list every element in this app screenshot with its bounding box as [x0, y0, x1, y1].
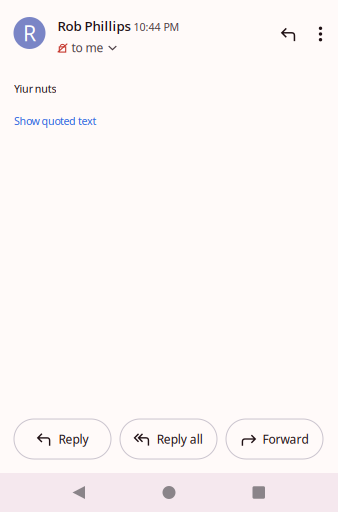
staticText: Reply all: [157, 431, 203, 447]
button[interactable]: Show quoted text: [14, 96, 96, 128]
button[interactable]: to me: [57, 40, 117, 56]
staticText: Show quoted text: [14, 114, 96, 128]
button[interactable]: Reply: [14, 419, 111, 459]
button[interactable]: Recent apps: [252, 473, 338, 512]
staticText: Yiur nuts: [14, 82, 56, 96]
button[interactable]: Reply all: [120, 419, 217, 459]
staticText: Forward: [262, 431, 308, 447]
button[interactable]: Home: [85, 473, 252, 512]
staticText: Reply: [58, 431, 88, 447]
staticText: to me: [71, 40, 103, 56]
staticText: R: [23, 19, 36, 47]
button[interactable]: Forward: [226, 419, 323, 459]
staticText: Rob Phillips: [57, 17, 130, 35]
staticText: 10:44 PM: [133, 20, 179, 34]
button[interactable]: Back: [0, 473, 85, 512]
button[interactable]: Reply: [272, 17, 306, 51]
button[interactable]: More options: [306, 17, 335, 51]
